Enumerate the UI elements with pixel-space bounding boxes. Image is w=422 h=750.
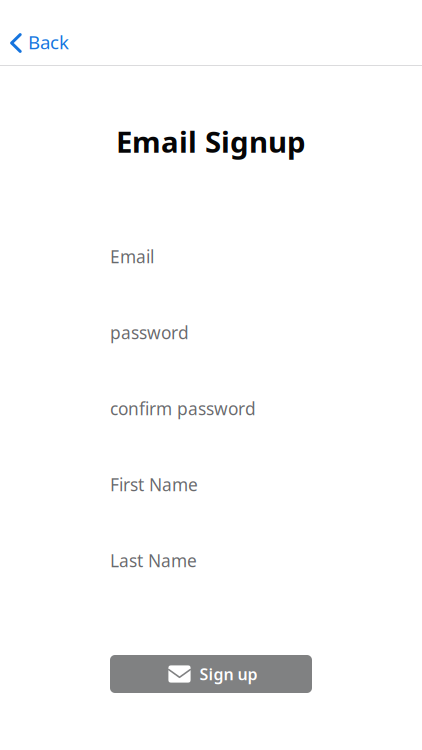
button[interactable]: password [0,317,422,348]
button[interactable]: Last Name [0,545,422,576]
button[interactable]: Sign up [110,655,312,693]
button[interactable]: Back [0,20,79,64]
staticText: Last Name [110,549,197,572]
staticText: Email [110,245,154,268]
staticText: confirm password [110,397,256,420]
staticText: Back [28,30,69,54]
staticText: First Name [110,473,198,496]
staticText: Sign up [200,663,258,685]
button[interactable]: confirm password [0,393,422,424]
staticText: Email Signup [116,122,306,161]
button[interactable]: Email [0,241,422,272]
button[interactable]: First Name [0,469,422,500]
staticText: password [110,321,189,344]
